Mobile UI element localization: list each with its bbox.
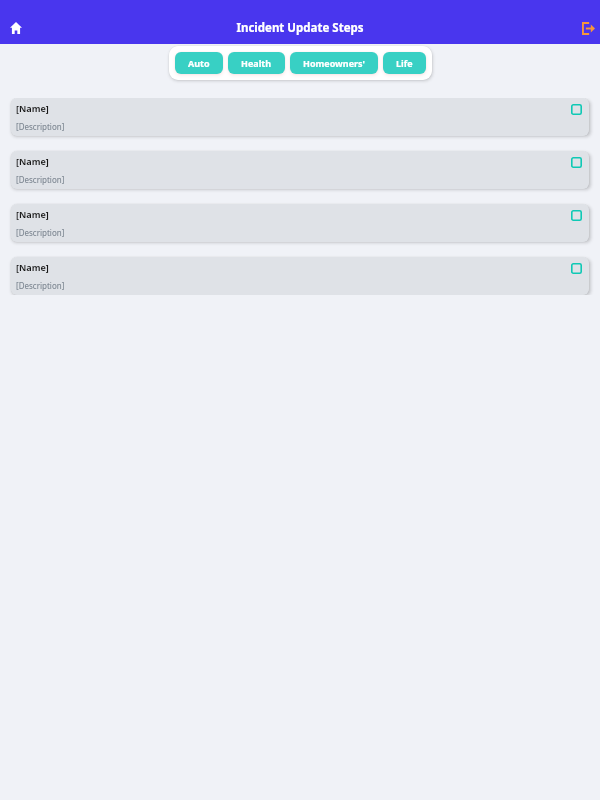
staticText: Incident Update Steps bbox=[236, 20, 364, 36]
button[interactable]: Select item bbox=[570, 209, 583, 222]
staticText: [Description] bbox=[16, 280, 65, 291]
button[interactable]: Homeowners' bbox=[290, 52, 378, 74]
staticText: Life bbox=[396, 57, 413, 69]
button[interactable]: Auto bbox=[175, 52, 223, 74]
button[interactable]: [Name] bbox=[11, 98, 589, 136]
staticText: Homeowners' bbox=[303, 57, 365, 69]
staticText: [Description] bbox=[16, 121, 65, 132]
staticText: [Name] bbox=[16, 155, 49, 167]
staticText: [Name] bbox=[16, 261, 49, 273]
staticText: Auto bbox=[188, 57, 210, 69]
button[interactable]: Health bbox=[228, 52, 285, 74]
staticText: [Description] bbox=[16, 174, 65, 185]
staticText: [Name] bbox=[16, 102, 49, 114]
staticText: [Name] bbox=[16, 208, 49, 220]
button[interactable]: Select item bbox=[570, 156, 583, 169]
button[interactable]: Home bbox=[2, 14, 30, 42]
button[interactable]: Select item bbox=[570, 262, 583, 275]
button[interactable]: Select item bbox=[570, 103, 583, 116]
button[interactable]: Logout bbox=[576, 16, 600, 40]
button[interactable]: [Name] bbox=[11, 257, 589, 295]
button[interactable]: Life bbox=[383, 52, 426, 74]
button[interactable]: [Name] bbox=[11, 151, 589, 189]
staticText: [Description] bbox=[16, 227, 65, 238]
button[interactable]: [Name] bbox=[11, 204, 589, 242]
staticText: Health bbox=[241, 57, 272, 69]
